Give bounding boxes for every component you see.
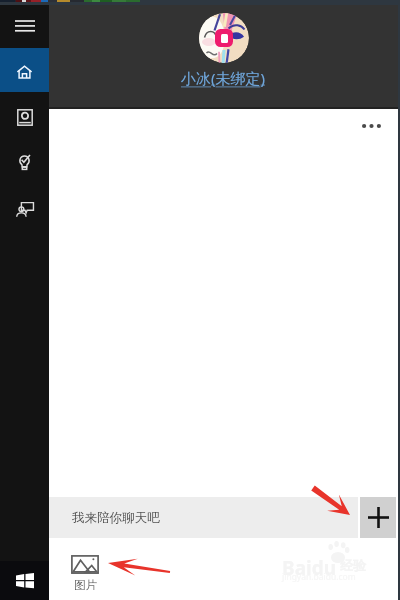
button[interactable]: Ideas [0, 143, 49, 183]
button[interactable]: Start [0, 561, 49, 600]
button[interactable]: Menu [0, 5, 49, 48]
button[interactable]: Photos [0, 92, 49, 143]
staticText: 图片 [74, 578, 97, 592]
button[interactable]: 我来陪你聊天吧 [49, 497, 358, 538]
button[interactable]: 图片 [71, 555, 99, 592]
button[interactable]: Home [0, 48, 49, 92]
staticText: 经验 [340, 557, 366, 573]
staticText: Baidu [282, 555, 337, 581]
staticText: 小冰(未绑定) [181, 68, 266, 88]
staticText: jingyan.baidu.com [282, 571, 356, 583]
button[interactable]: People [0, 183, 49, 235]
staticText: 我来陪你聊天吧 [72, 510, 160, 526]
button[interactable]: Add [360, 497, 396, 538]
button[interactable]: More options [356, 114, 386, 138]
